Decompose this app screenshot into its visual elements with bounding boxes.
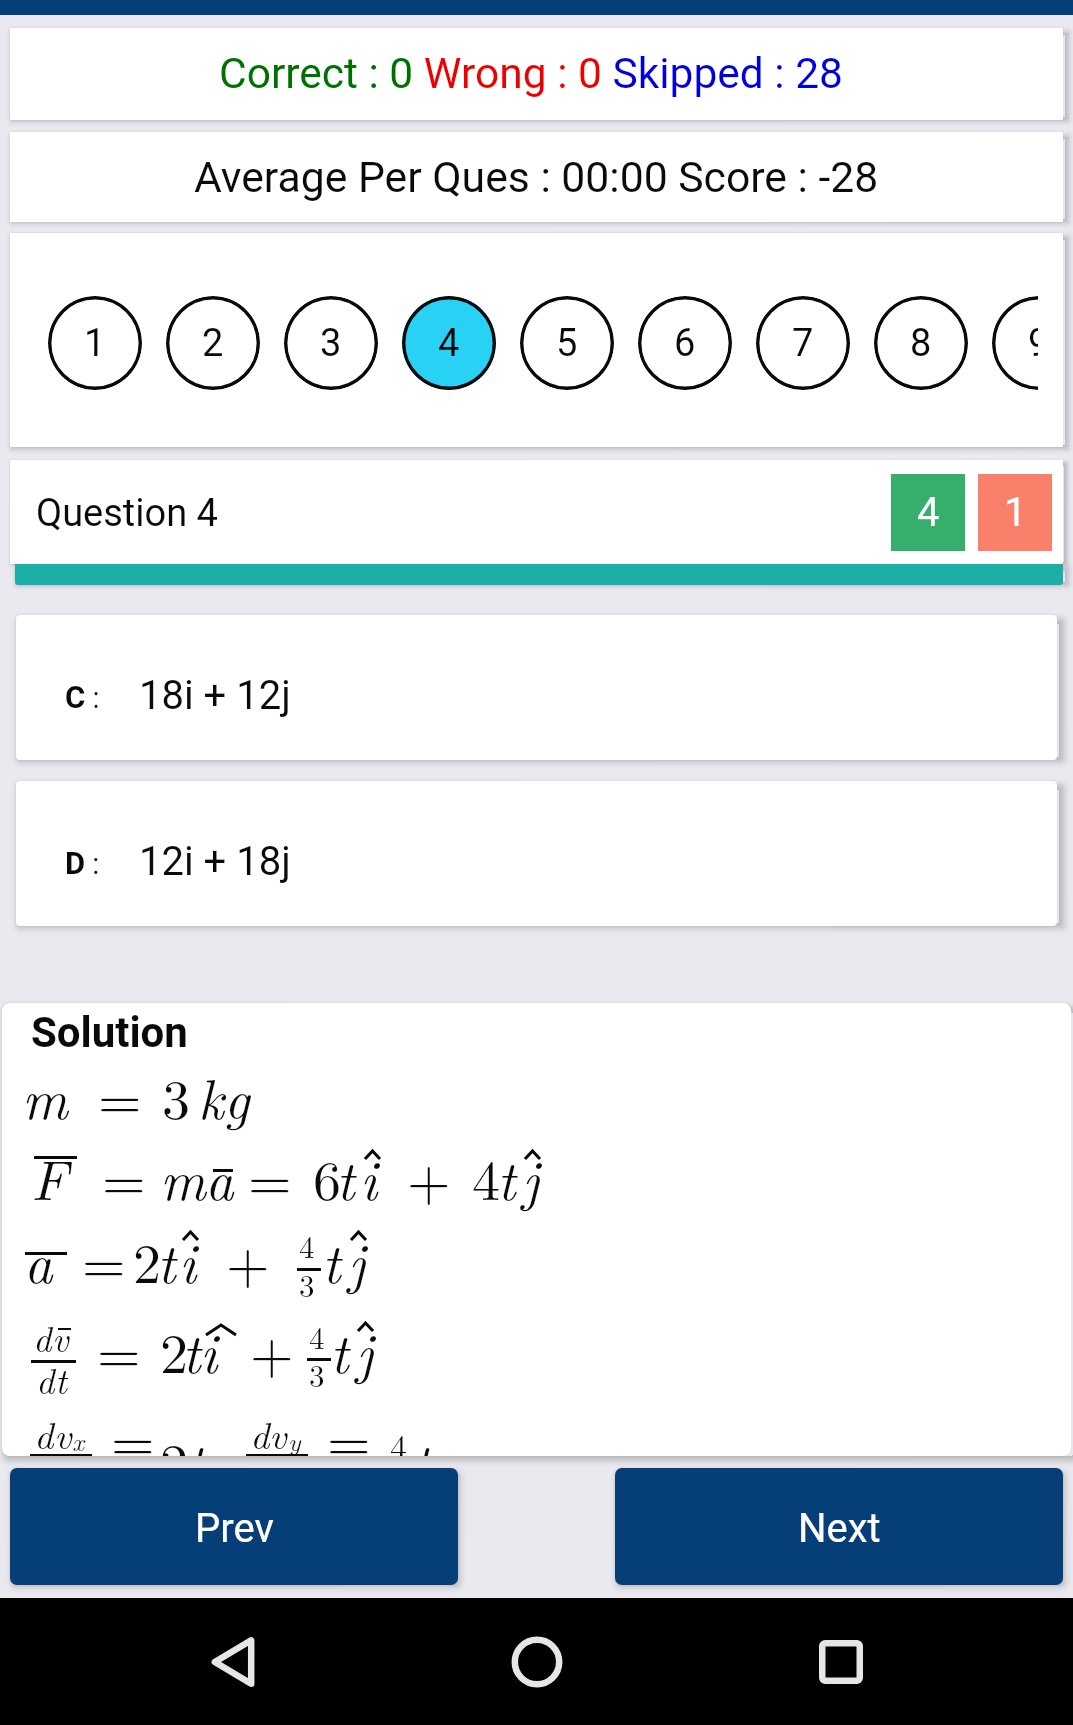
staticText: t — [330, 1310, 349, 1389]
staticText: d — [36, 1353, 55, 1404]
staticText: 1 — [84, 321, 106, 366]
staticText: Prev — [195, 1505, 274, 1552]
staticText: t — [55, 1353, 67, 1404]
staticText: 4 — [309, 1314, 325, 1358]
staticText: 2 — [160, 1420, 188, 1456]
staticText: Average Per Ques : 00:00 Score : -28 — [194, 152, 879, 202]
staticText: = — [98, 1056, 142, 1135]
staticText: = — [102, 1137, 146, 1216]
staticText: = — [248, 1137, 292, 1216]
staticText: 18i + 12j — [139, 672, 291, 719]
button[interactable]: 4 — [891, 474, 965, 551]
staticText: t — [336, 1137, 355, 1216]
staticText: = — [82, 1220, 126, 1299]
button[interactable]: Prev — [10, 1468, 458, 1585]
staticText: t — [322, 1220, 341, 1299]
staticText: + — [407, 1137, 451, 1216]
staticText: t — [412, 1420, 431, 1456]
staticText: 8 — [910, 321, 932, 366]
staticText: kg — [198, 1056, 250, 1135]
staticText: = — [97, 1310, 141, 1389]
staticText: d — [33, 1311, 52, 1362]
staticText: = — [327, 1398, 371, 1456]
staticText: Solution — [31, 1008, 188, 1057]
staticText: C : — [65, 679, 100, 715]
staticText: 3 — [320, 321, 342, 366]
staticText: 4 — [472, 1137, 500, 1216]
staticText: F — [31, 1137, 68, 1216]
button[interactable]: 9 — [992, 296, 1038, 390]
staticText: 3 — [309, 1352, 325, 1396]
staticText: j — [522, 1137, 540, 1216]
staticText: 1 — [1004, 489, 1027, 536]
staticText: m — [22, 1056, 68, 1135]
button[interactable]: D : — [16, 781, 1057, 926]
staticText: j — [348, 1220, 366, 1299]
button[interactable]: 1 — [48, 296, 142, 390]
staticText: i — [179, 1220, 197, 1299]
button[interactable]: Home — [487, 1612, 587, 1712]
staticText: t — [182, 1310, 201, 1389]
button[interactable]: 7 — [756, 296, 850, 390]
button[interactable]: 4 — [402, 296, 496, 390]
staticText: 6 — [674, 321, 696, 366]
staticText: v — [54, 1406, 72, 1456]
staticText: y — [288, 1422, 301, 1456]
staticText: t — [497, 1137, 516, 1216]
button[interactable]: C : — [16, 615, 1057, 760]
button[interactable]: Back — [183, 1612, 283, 1712]
staticText: 6 — [313, 1137, 341, 1216]
staticText: + — [226, 1220, 270, 1299]
staticText: m — [160, 1137, 206, 1216]
staticText: d — [34, 1406, 54, 1456]
staticText: 7 — [792, 321, 814, 366]
staticText: a — [24, 1220, 53, 1299]
staticText: Next — [798, 1505, 881, 1552]
button[interactable]: Next — [615, 1468, 1063, 1585]
button[interactable]: 5 — [520, 296, 614, 390]
button[interactable]: 3 — [284, 296, 378, 390]
staticText: 4 — [917, 489, 940, 536]
staticText: 2 — [160, 1310, 188, 1389]
staticText: d — [250, 1406, 270, 1456]
staticText: t — [157, 1220, 176, 1299]
staticText: i — [200, 1310, 218, 1389]
staticText: 4 — [299, 1223, 315, 1267]
staticText: 4 — [438, 321, 460, 366]
staticText: 9 — [1028, 321, 1038, 366]
staticText: 2 — [133, 1220, 161, 1299]
button[interactable]: Recent apps — [791, 1612, 891, 1712]
staticText: 2 — [202, 321, 224, 366]
button[interactable]: 2 — [166, 296, 260, 390]
button[interactable]: 8 — [874, 296, 968, 390]
staticText: 3 — [299, 1262, 315, 1306]
button[interactable]: 1 — [978, 474, 1052, 551]
staticText: x — [72, 1422, 85, 1456]
staticText: a — [205, 1137, 234, 1216]
button[interactable]: 6 — [638, 296, 732, 390]
staticText: Correct : 0 Wrong : 0 Skipped : 28 — [219, 49, 854, 99]
staticText: v — [52, 1311, 69, 1362]
staticText: v — [269, 1406, 287, 1456]
staticText: 4 — [390, 1421, 407, 1456]
staticText: 5 — [556, 321, 578, 366]
staticText: j — [356, 1310, 374, 1389]
staticText: t — [186, 1420, 205, 1456]
staticText: 12i + 18j — [139, 838, 291, 885]
staticText: 3 — [162, 1056, 190, 1135]
staticText: = — [111, 1398, 155, 1456]
staticText: i — [360, 1137, 378, 1216]
staticText: + — [250, 1310, 294, 1389]
staticText: D : — [65, 845, 100, 881]
staticText: Question 4 — [36, 491, 218, 536]
